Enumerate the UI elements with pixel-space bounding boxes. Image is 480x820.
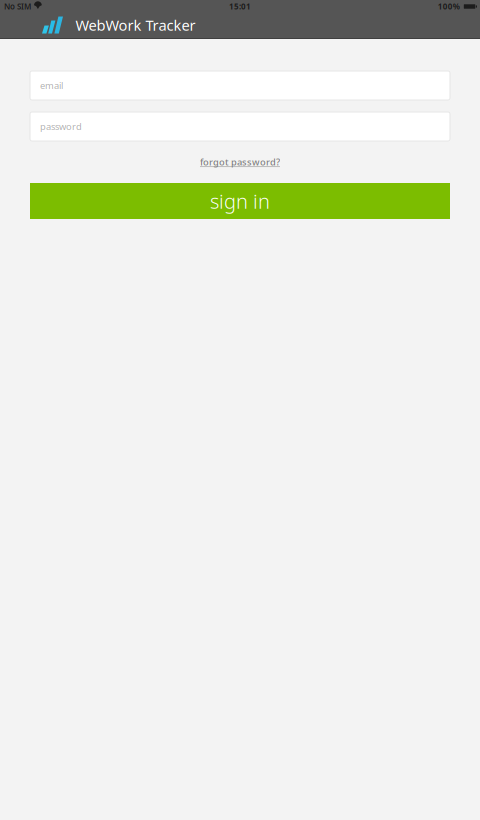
staticText: WebWork Tracker [75, 15, 195, 35]
button[interactable]: sign in [30, 183, 450, 219]
button[interactable]: password [30, 112, 450, 141]
staticText: password [40, 120, 82, 133]
staticText: 100% [438, 1, 460, 12]
button[interactable]: email [30, 71, 450, 100]
staticText: No SIM [4, 1, 31, 12]
staticText: forgot password? [200, 156, 280, 168]
button[interactable]: forgot password? [30, 153, 450, 171]
staticText: email [40, 79, 63, 92]
staticText: sign in [210, 188, 270, 214]
staticText: 15:01 [229, 1, 251, 12]
